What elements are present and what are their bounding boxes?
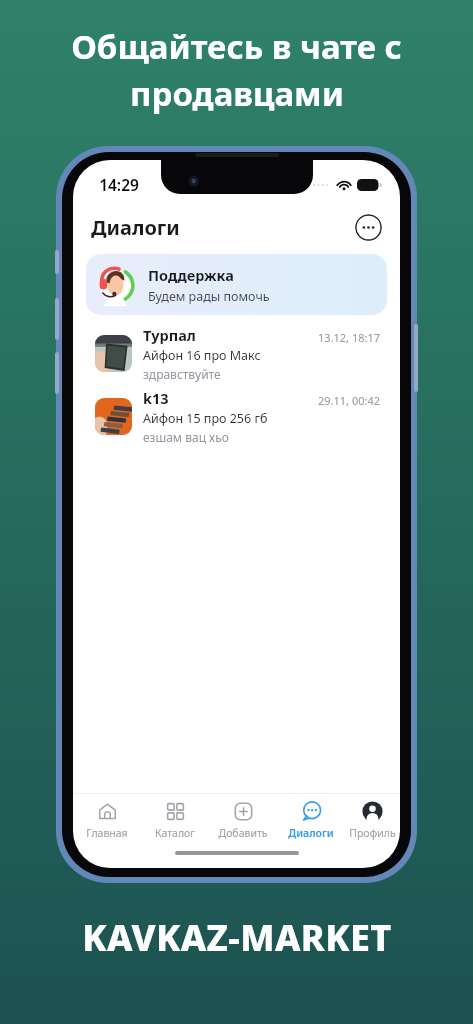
staticText: Турпал: [143, 325, 196, 345]
staticText: Общайтесь в чате с: [71, 24, 402, 69]
button[interactable]: Поддержка: [86, 254, 387, 315]
staticText: Профиль: [349, 826, 396, 840]
staticText: езшам вац хьо: [143, 429, 229, 445]
staticText: продавцами: [130, 71, 344, 116]
staticText: Диалоги: [91, 214, 180, 241]
button[interactable]: More options: [355, 214, 382, 241]
staticText: Будем рады помочь: [148, 288, 270, 305]
button[interactable]: Профиль: [345, 798, 400, 843]
staticText: k13: [143, 388, 169, 408]
button[interactable]: k13: [73, 387, 400, 445]
staticText: Добавить: [218, 826, 268, 840]
staticText: здравствуйте: [143, 366, 221, 382]
staticText: 13.12, 18:17: [317, 330, 380, 345]
staticText: Поддержка: [148, 265, 234, 285]
staticText: Диалоги: [288, 826, 334, 840]
button[interactable]: Диалоги: [277, 798, 345, 843]
staticText: 14:29: [99, 174, 139, 195]
button[interactable]: Каталог: [141, 798, 209, 843]
button[interactable]: Турпал: [73, 324, 400, 382]
staticText: KAVKAZ-MARKET: [82, 913, 392, 962]
staticText: 29.11, 00:42: [317, 393, 380, 408]
staticText: Главная: [86, 826, 128, 840]
button[interactable]: Главная: [73, 798, 141, 843]
staticText: Айфон 16 про Макс: [143, 347, 261, 364]
staticText: Айфон 15 про 256 гб: [143, 410, 268, 427]
button[interactable]: Добавить: [209, 798, 277, 843]
staticText: Каталог: [155, 826, 195, 840]
